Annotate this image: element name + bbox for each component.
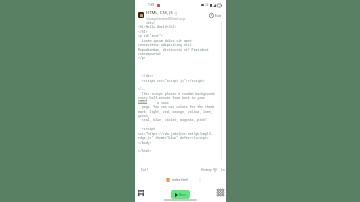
- staticText: dark, light, red, orange, yellow, lime,: [138, 110, 213, 114]
- button[interactable]: Apps: [216, 188, 225, 197]
- staticText: Ln: [221, 168, 225, 172]
- staticText: </html>: [138, 149, 152, 153]
- staticText: Repudiandae, distinctio et? Provident: [138, 48, 209, 52]
- staticText: Col 1: [141, 168, 149, 172]
- staticText: History: [201, 168, 212, 172]
- button[interactable]: Keyboard: [136, 188, 145, 197]
- staticText: This script places a random background: [138, 92, 215, 96]
- staticText: 1:41: [148, 3, 155, 7]
- staticText: teal, blue, violet, magenta, pink!: [138, 118, 207, 122]
- staticText: Lorem ipsum dolor sit amet: [138, 39, 192, 43]
- staticText: <p id="text">: [138, 34, 163, 38]
- staticText: green,: [138, 114, 150, 118]
- staticText: edge.js" theme="blue" defer></script>: [138, 136, 209, 140]
- button[interactable]: Col 1: [141, 168, 149, 172]
- staticText: <h1>Hello World</h1>: [138, 25, 177, 29]
- staticText: index.html: [172, 178, 188, 182]
- button[interactable]: More options: [199, 177, 201, 182]
- staticText: <script src="script.js"></script>: [138, 79, 205, 83]
- staticText: page. You can use colors for the theme: [138, 105, 215, 109]
- staticText: 32: [205, 3, 209, 7]
- button[interactable]: index.html: [166, 178, 188, 182]
- staticText: </h1>: [138, 30, 148, 34]
- staticText: consectetur adipisicing elit.: [138, 43, 194, 47]
- staticText: /storage/emulated/0/html-css-js: [146, 17, 186, 21]
- staticText: </body>: [138, 141, 152, 145]
- staticText: a same: [138, 101, 169, 105]
- staticText: <!--: [138, 87, 146, 91]
- button[interactable]: History: [201, 168, 225, 172]
- staticText: src="https://cdn.jsdelivr.net/gh/rmp13-: [138, 132, 213, 136]
- button[interactable]: Exit: [209, 13, 222, 18]
- staticText: Acode: [138, 100, 147, 104]
- staticText: <script: [138, 127, 156, 131]
- staticText: <div>: [138, 21, 156, 25]
- staticText: HTML, CSS, JS: [146, 10, 173, 16]
- button[interactable]: Run: [171, 190, 190, 199]
- staticText: </div>: [138, 74, 154, 78]
- staticText: </p>: [138, 56, 146, 60]
- staticText: Run: [179, 192, 186, 197]
- staticText: every half-minute from back to your: [138, 96, 205, 100]
- staticText: Exit: [215, 13, 222, 18]
- staticText: consequuntur: [138, 52, 161, 56]
